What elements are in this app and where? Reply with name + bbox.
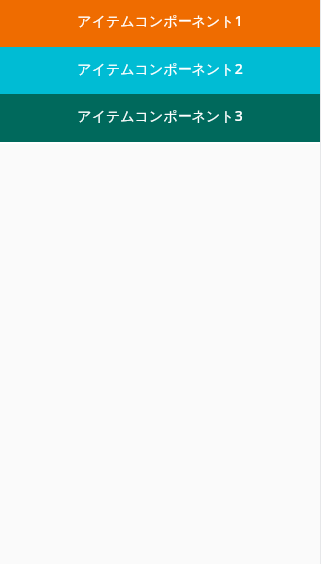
- button[interactable]: アイテムコンポーネント2: [0, 47, 320, 95]
- button[interactable]: アイテムコンポーネント1: [0, 0, 320, 47]
- button[interactable]: アイテムコンポーネント3: [0, 94, 320, 142]
- staticText: アイテムコンポーネント2: [77, 59, 243, 78]
- staticText: アイテムコンポーネント3: [77, 106, 243, 125]
- staticText: アイテムコンポーネント1: [77, 11, 243, 30]
